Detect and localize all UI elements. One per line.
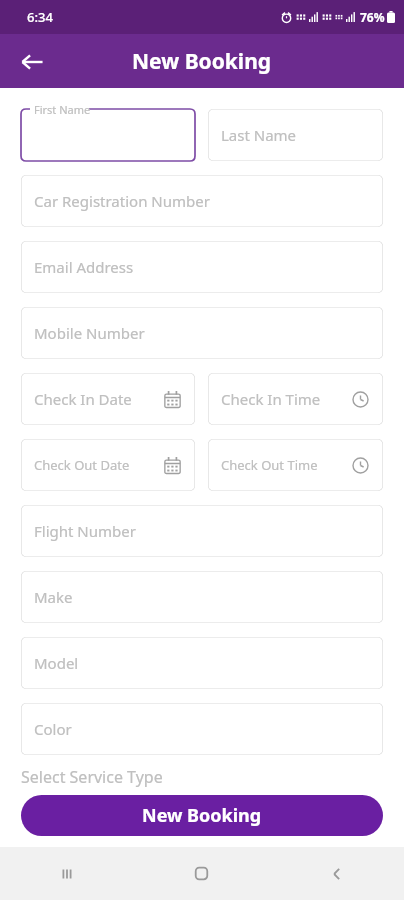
staticText: New Booking: [132, 47, 272, 76]
button[interactable]: Back: [11, 41, 52, 82]
button[interactable]: Check In Time: [208, 373, 383, 425]
button[interactable]: Car Registration Number: [21, 175, 383, 227]
staticText: 6:34: [27, 8, 53, 26]
staticText: Flight Number: [34, 521, 136, 541]
staticText: Make: [34, 587, 73, 607]
button[interactable]: Check Out Time: [208, 439, 383, 491]
button[interactable]: Flight Number: [21, 505, 383, 557]
button[interactable]: Make: [21, 571, 383, 623]
button[interactable]: Color: [21, 703, 383, 755]
staticText: Email Address: [34, 257, 134, 277]
staticText: Check Out Date: [34, 456, 130, 474]
button[interactable]: Mobile Number: [21, 307, 383, 359]
button[interactable]: Home: [134, 847, 269, 900]
button[interactable]: Last Name: [208, 109, 383, 161]
button[interactable]: Recents: [0, 847, 134, 900]
staticText: Mobile Number: [34, 323, 145, 343]
button[interactable]: New Booking: [21, 795, 383, 836]
button[interactable]: First Name: [21, 109, 195, 161]
staticText: First Name: [34, 102, 91, 117]
button[interactable]: Email Address: [21, 241, 383, 293]
staticText: Model: [34, 653, 79, 673]
staticText: New Booking: [142, 803, 262, 828]
staticText: 76%: [360, 9, 385, 25]
staticText: Check In Time: [221, 389, 321, 409]
button[interactable]: Back: [269, 847, 404, 900]
staticText: Select Service Type: [21, 766, 163, 788]
staticText: Check Out Time: [221, 456, 318, 474]
button[interactable]: Check In Date: [21, 373, 195, 425]
button[interactable]: Check Out Date: [21, 439, 195, 491]
staticText: Check In Date: [34, 389, 132, 409]
button[interactable]: Model: [21, 637, 383, 689]
staticText: Color: [34, 719, 72, 739]
staticText: Last Name: [221, 125, 297, 145]
staticText: Car Registration Number: [34, 191, 210, 211]
